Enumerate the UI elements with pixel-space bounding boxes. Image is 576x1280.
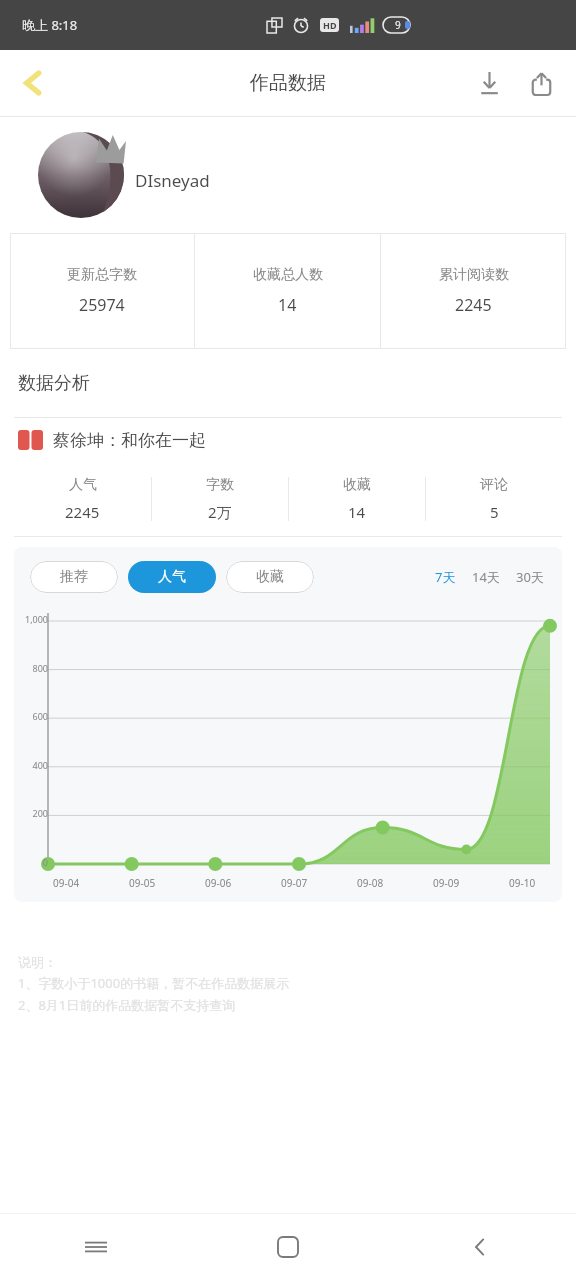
staticText: 更新总字数: [67, 266, 137, 284]
staticText: 收藏: [256, 568, 284, 586]
staticText: 09-07: [281, 876, 308, 890]
staticText: 09-10: [509, 876, 536, 890]
staticText: 09-09: [433, 876, 460, 890]
button[interactable]: 人气: [128, 561, 216, 593]
staticText: DIsneyad: [135, 169, 210, 192]
staticText: 人气: [158, 568, 186, 586]
staticText: 7天: [435, 568, 456, 586]
button[interactable]: 蔡徐坤：和你在一起: [0, 418, 576, 462]
staticText: 1,000: [24, 613, 48, 625]
button[interactable]: 7天: [433, 566, 458, 588]
button[interactable]: Back: [384, 1214, 576, 1280]
staticText: 14: [348, 502, 366, 522]
staticText: 14天: [472, 568, 500, 586]
staticText: 累计阅读数: [439, 266, 509, 284]
staticText: 1、字数小于1000的书籍，暂不在作品数据展示: [18, 974, 290, 992]
staticText: 200: [32, 807, 48, 819]
button[interactable]: Back: [10, 60, 56, 106]
staticText: 0: [42, 856, 48, 868]
staticText: 2万: [208, 502, 232, 522]
staticText: 评论: [480, 476, 508, 494]
button[interactable]: Download: [468, 62, 510, 104]
staticText: 09-05: [129, 876, 156, 890]
button[interactable]: 字数: [152, 462, 288, 536]
staticText: 说明：: [18, 954, 57, 970]
staticText: 9: [395, 18, 401, 32]
staticText: 600: [32, 710, 48, 722]
staticText: 推荐: [60, 568, 88, 586]
staticText: 收藏总人数: [253, 266, 323, 284]
staticText: 30天: [516, 568, 544, 586]
staticText: 09-08: [357, 876, 384, 890]
button[interactable]: Home: [192, 1214, 384, 1280]
button[interactable]: 30天: [514, 566, 546, 588]
staticText: 晚上 8:18: [22, 16, 78, 34]
button[interactable]: 收藏: [289, 462, 425, 536]
staticText: 400: [32, 759, 48, 771]
button[interactable]: 收藏: [226, 561, 314, 593]
staticText: 数据分析: [18, 372, 90, 395]
staticText: HD: [323, 19, 337, 31]
button[interactable]: Avatar: [38, 132, 124, 218]
button[interactable]: 推荐: [30, 561, 118, 593]
staticText: 09-06: [205, 876, 232, 890]
staticText: 2245: [65, 502, 100, 522]
staticText: 收藏: [343, 476, 371, 494]
staticText: 2245: [455, 294, 492, 316]
staticText: 09-04: [53, 876, 80, 890]
staticText: 2、8月1日前的作品数据暂不支持查询: [18, 996, 236, 1014]
button[interactable]: 14天: [470, 566, 502, 588]
button[interactable]: 更新总字数: [10, 233, 194, 349]
button[interactable]: 累计阅读数: [381, 233, 566, 349]
staticText: 14: [278, 294, 297, 316]
staticText: 5: [490, 502, 499, 522]
button[interactable]: Recents: [0, 1214, 192, 1280]
staticText: 字数: [206, 476, 234, 494]
staticText: 作品数据: [250, 71, 326, 95]
button[interactable]: 人气: [14, 462, 151, 536]
button[interactable]: 收藏总人数: [195, 233, 380, 349]
staticText: 25974: [79, 294, 125, 316]
button[interactable]: 评论: [426, 462, 562, 536]
staticText: 蔡徐坤：和你在一起: [53, 430, 206, 451]
staticText: 800: [32, 662, 48, 674]
staticText: 人气: [69, 476, 97, 494]
button[interactable]: Share: [520, 62, 562, 104]
